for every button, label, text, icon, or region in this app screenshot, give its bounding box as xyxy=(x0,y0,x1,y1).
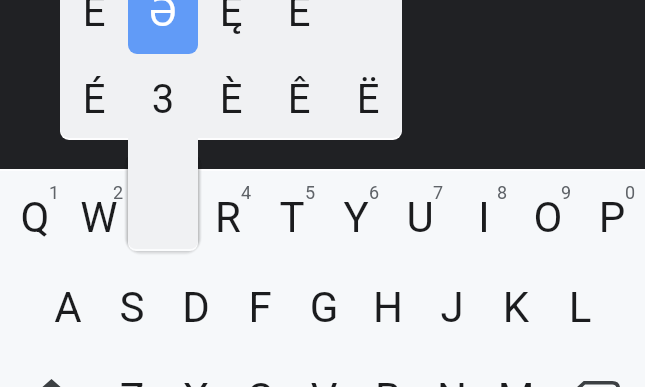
staticText: K xyxy=(436,283,596,332)
button[interactable] xyxy=(195,171,260,261)
button[interactable] xyxy=(65,171,130,261)
staticText: D xyxy=(116,283,276,332)
staticText: 5 xyxy=(230,182,390,203)
staticText: X xyxy=(116,374,276,387)
button[interactable] xyxy=(357,261,422,351)
staticText: U xyxy=(340,193,500,242)
staticText: 2 xyxy=(38,182,198,203)
button[interactable] xyxy=(162,351,227,387)
button[interactable] xyxy=(260,171,325,261)
staticText: O xyxy=(468,193,628,242)
staticText: L xyxy=(500,283,645,332)
button[interactable] xyxy=(487,351,552,387)
staticText: Ê xyxy=(219,76,379,123)
staticText: 3 xyxy=(102,182,262,203)
staticText: 4 xyxy=(166,182,326,203)
staticText: R xyxy=(148,193,308,242)
button[interactable] xyxy=(97,261,162,351)
staticText: Ē xyxy=(14,0,174,36)
staticText: 3 xyxy=(83,76,243,123)
button[interactable] xyxy=(130,171,195,261)
staticText: W xyxy=(19,193,179,242)
staticText: È xyxy=(151,76,311,123)
staticText: 6 xyxy=(294,182,454,203)
staticText: I xyxy=(404,193,564,242)
button[interactable] xyxy=(520,171,585,261)
button[interactable] xyxy=(265,55,333,138)
button[interactable] xyxy=(585,171,645,261)
button[interactable]: Backspace xyxy=(552,351,645,387)
button[interactable] xyxy=(292,351,357,387)
button[interactable] xyxy=(422,351,487,387)
staticText: 9 xyxy=(486,182,645,203)
button[interactable]: Shift xyxy=(0,351,97,387)
button[interactable] xyxy=(128,55,196,138)
staticText: 8 xyxy=(422,182,582,203)
button[interactable] xyxy=(552,261,617,351)
button[interactable] xyxy=(265,0,333,55)
button[interactable] xyxy=(227,351,292,387)
staticText: 0 xyxy=(550,182,645,203)
button[interactable] xyxy=(227,261,292,351)
staticText: Ə xyxy=(83,0,243,36)
button[interactable] xyxy=(390,171,455,261)
staticText: Q xyxy=(0,193,115,242)
staticText: H xyxy=(308,283,468,332)
staticText: T xyxy=(212,193,372,242)
button[interactable] xyxy=(292,261,357,351)
staticText: A xyxy=(0,283,148,332)
staticText: Z xyxy=(52,374,212,387)
staticText: B xyxy=(308,374,468,387)
staticText: Y xyxy=(276,193,436,242)
staticText: E xyxy=(84,193,244,242)
button[interactable] xyxy=(0,171,65,261)
button[interactable] xyxy=(487,261,552,351)
staticText: Ę xyxy=(151,0,311,36)
button[interactable] xyxy=(60,0,128,55)
staticText: G xyxy=(244,283,404,332)
staticText: 7 xyxy=(358,182,518,203)
button[interactable] xyxy=(422,261,487,351)
button[interactable] xyxy=(357,351,422,387)
staticText: É xyxy=(14,76,174,123)
button[interactable] xyxy=(197,0,265,55)
staticText: C xyxy=(180,374,340,387)
staticText: J xyxy=(372,283,532,332)
button[interactable] xyxy=(32,261,97,351)
staticText: 1 xyxy=(0,182,134,203)
staticText: Ë xyxy=(288,76,448,123)
staticText: S xyxy=(52,283,212,332)
staticText: V xyxy=(244,374,404,387)
staticText: N xyxy=(372,374,532,387)
staticText: M xyxy=(436,374,596,387)
button[interactable] xyxy=(60,55,128,138)
button[interactable] xyxy=(334,55,402,138)
button[interactable] xyxy=(455,171,520,261)
button[interactable] xyxy=(97,351,162,387)
button[interactable] xyxy=(128,0,196,55)
button[interactable] xyxy=(162,261,227,351)
button[interactable] xyxy=(325,171,390,261)
staticText: F xyxy=(180,283,340,332)
button[interactable] xyxy=(197,55,265,138)
staticText: Ė xyxy=(219,0,379,36)
staticText: P xyxy=(532,193,645,242)
